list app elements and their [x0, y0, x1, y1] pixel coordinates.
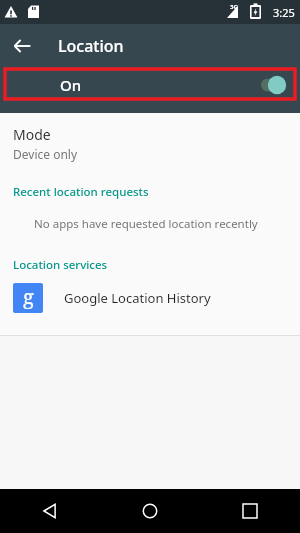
staticText: Google Location History — [64, 289, 211, 307]
staticText: No apps have requested location recently — [34, 216, 286, 232]
button[interactable]: Back — [0, 24, 44, 68]
button[interactable]: Recent apps — [200, 489, 300, 533]
button[interactable]: Home — [100, 489, 200, 533]
staticText: On — [60, 75, 82, 95]
staticText: Location — [58, 35, 124, 57]
staticText: g — [23, 283, 34, 310]
staticText: Recent location requests — [13, 184, 286, 200]
button[interactable]: Back — [0, 489, 100, 533]
staticText: Location services — [13, 257, 286, 273]
staticText: Mode — [13, 125, 51, 144]
staticText: 3:25 — [273, 5, 295, 20]
button[interactable]: Mode — [0, 113, 300, 166]
staticText: 3G — [230, 3, 238, 11]
button[interactable]: On — [5, 69, 295, 101]
button[interactable]: g — [0, 279, 300, 317]
staticText: Device only — [13, 146, 78, 162]
